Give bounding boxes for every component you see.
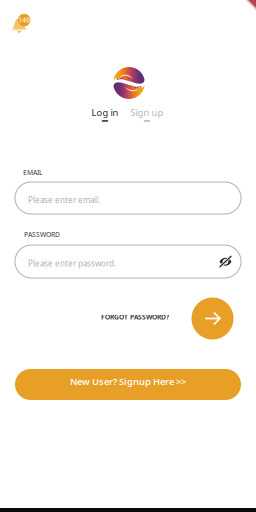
staticText: FORGOT PASSWORD? bbox=[101, 313, 169, 321]
staticText: EMAIL bbox=[23, 168, 43, 177]
staticText: PASSWORD bbox=[24, 230, 60, 239]
button[interactable]: FORGOT PASSWORD? bbox=[101, 313, 169, 321]
staticText: 140 bbox=[18, 15, 30, 24]
button[interactable]: Show password bbox=[219, 255, 232, 267]
button[interactable]: Notifications bbox=[11, 13, 31, 34]
button[interactable]: New User? Signup Here >> bbox=[15, 369, 241, 400]
staticText: Please enter email. bbox=[28, 195, 100, 205]
button[interactable]: Sign up bbox=[130, 106, 163, 122]
staticText: Sign up bbox=[130, 106, 163, 119]
staticText: Please enter password. bbox=[28, 258, 116, 269]
button[interactable]: Log in bbox=[191, 297, 233, 340]
button[interactable]: Log in bbox=[91, 106, 118, 122]
staticText: New User? Signup Here >> bbox=[70, 375, 186, 388]
staticText: Log in bbox=[91, 106, 118, 119]
